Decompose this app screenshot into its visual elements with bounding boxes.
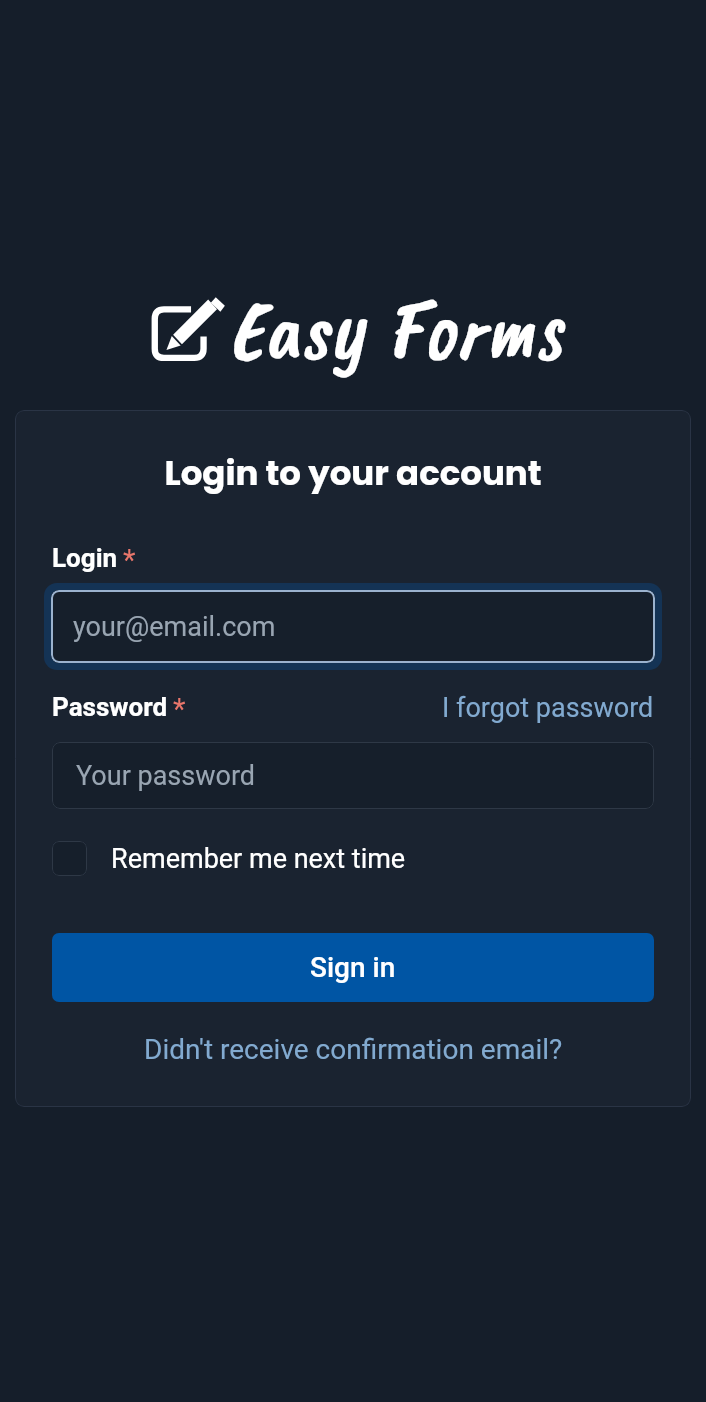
button[interactable]: Your password: [52, 742, 654, 809]
staticText: Login to your account: [52, 449, 654, 497]
staticText: *: [123, 543, 136, 577]
button[interactable]: Remember me next time: [52, 841, 406, 876]
staticText: Didn't receive confirmation email?: [144, 1033, 563, 1066]
button[interactable]: Sign in: [52, 933, 654, 1002]
button[interactable]: I forgot password: [442, 692, 654, 724]
button[interactable]: Didn't receive confirmation email?: [52, 1033, 654, 1066]
staticText: Your password: [76, 760, 256, 792]
staticText: Sign in: [310, 951, 396, 984]
staticText: Remember me next time: [111, 843, 406, 875]
staticText: *: [173, 692, 186, 726]
staticText: I forgot password: [442, 692, 654, 724]
staticText: Password: [52, 692, 168, 722]
staticText: Login: [52, 543, 118, 573]
button[interactable]: your@email.com: [51, 590, 655, 663]
staticText: Easy Forms: [228, 275, 563, 383]
staticText: your@email.com: [73, 611, 276, 643]
